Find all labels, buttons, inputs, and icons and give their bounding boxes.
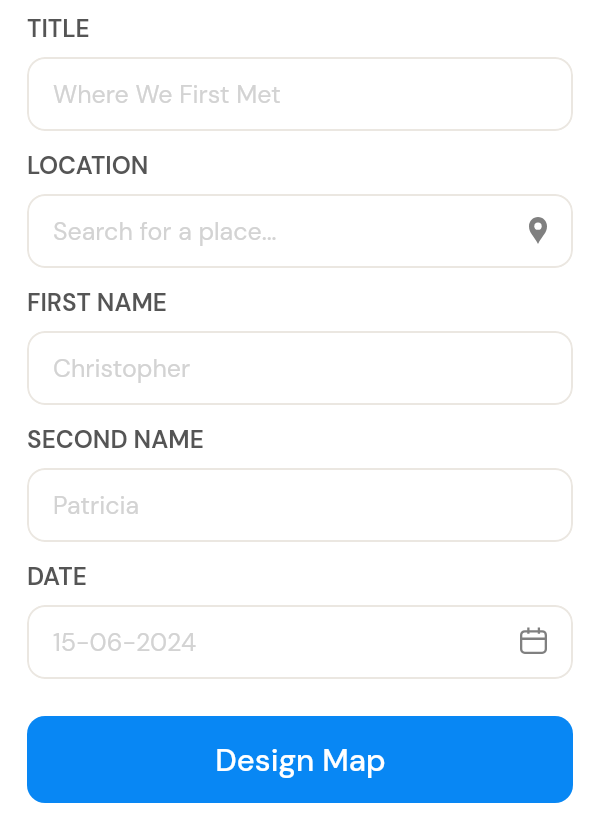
button[interactable]: First name: [27, 331, 573, 405]
staticText: Design Map: [215, 740, 386, 780]
button[interactable]: Title: [27, 57, 573, 131]
staticText: SECOND NAME: [27, 424, 204, 449]
staticText: 15-06-2024: [53, 626, 197, 659]
staticText: Christopher: [53, 352, 191, 385]
button[interactable]: Pick location: [513, 212, 547, 250]
button[interactable]: Design Map: [27, 716, 573, 803]
button[interactable]: Pick date: [513, 625, 547, 659]
staticText: FIRST NAME: [27, 287, 167, 312]
button[interactable]: Location: [27, 194, 573, 268]
staticText: Patricia: [53, 489, 140, 522]
staticText: Where We First Met: [53, 78, 281, 111]
button[interactable]: Second name: [27, 468, 573, 542]
staticText: TITLE: [27, 13, 90, 38]
staticText: LOCATION: [27, 150, 149, 175]
staticText: Search for a place...: [53, 215, 277, 248]
button[interactable]: Date: [27, 605, 573, 679]
staticText: DATE: [27, 561, 87, 586]
